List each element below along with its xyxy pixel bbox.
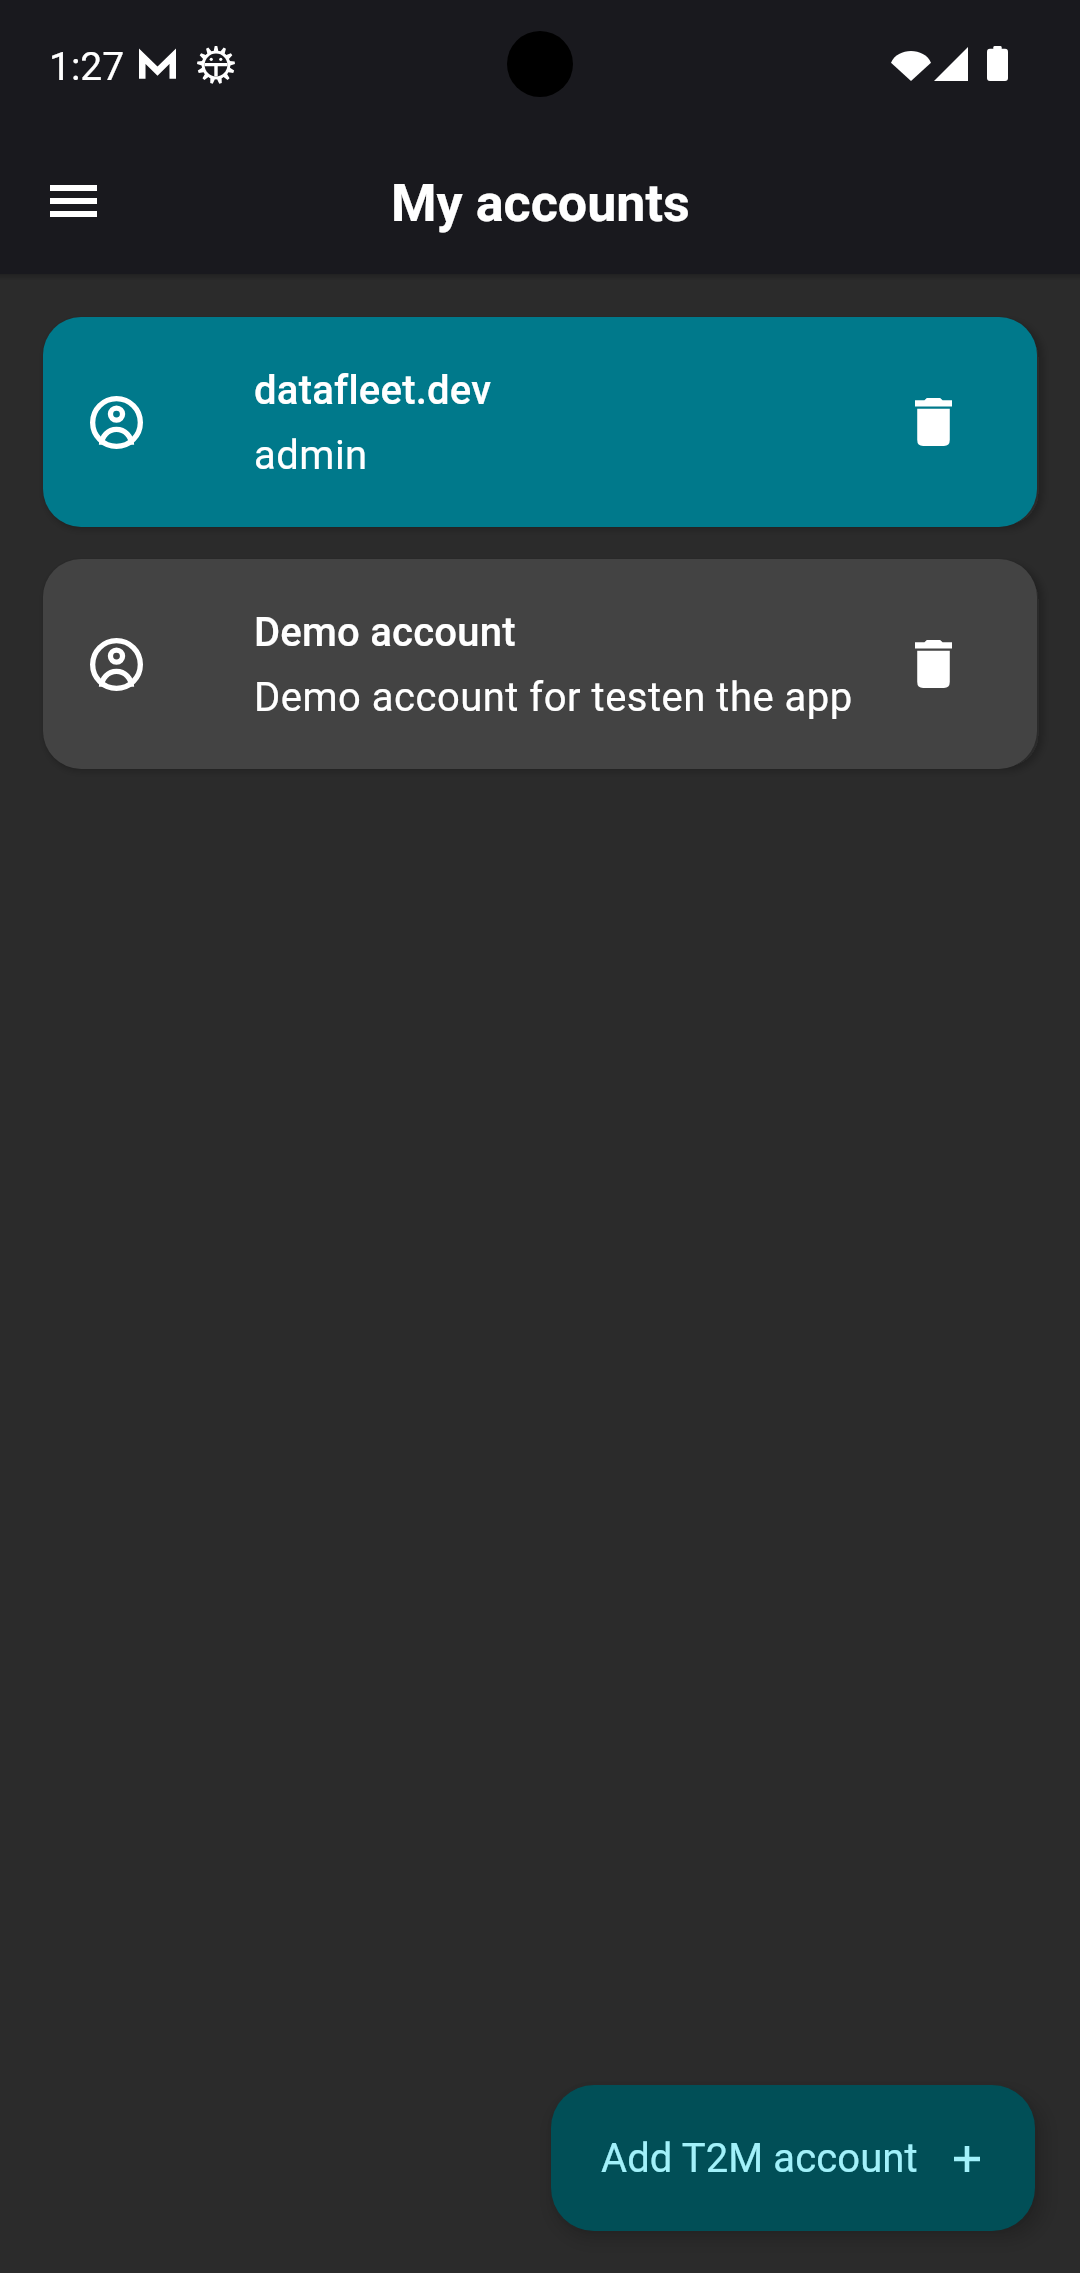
button[interactable]: Delete account <box>889 559 1037 769</box>
staticText: Demo account for testen the app <box>254 674 853 721</box>
staticText: admin <box>254 432 368 479</box>
button[interactable]: datafleet.dev <box>43 317 1037 527</box>
button[interactable]: Add T2M account <box>551 2085 1035 2231</box>
staticText: Add T2M account <box>601 2135 918 2182</box>
button[interactable]: Delete account <box>889 317 1037 527</box>
button[interactable]: Open navigation menu <box>25 153 121 249</box>
button[interactable]: Demo account <box>43 559 1037 769</box>
staticText: datafleet.dev <box>254 367 492 414</box>
staticText: My accounts <box>391 173 690 234</box>
staticText: Demo account <box>254 609 516 656</box>
staticText: 1:27 <box>49 44 125 90</box>
